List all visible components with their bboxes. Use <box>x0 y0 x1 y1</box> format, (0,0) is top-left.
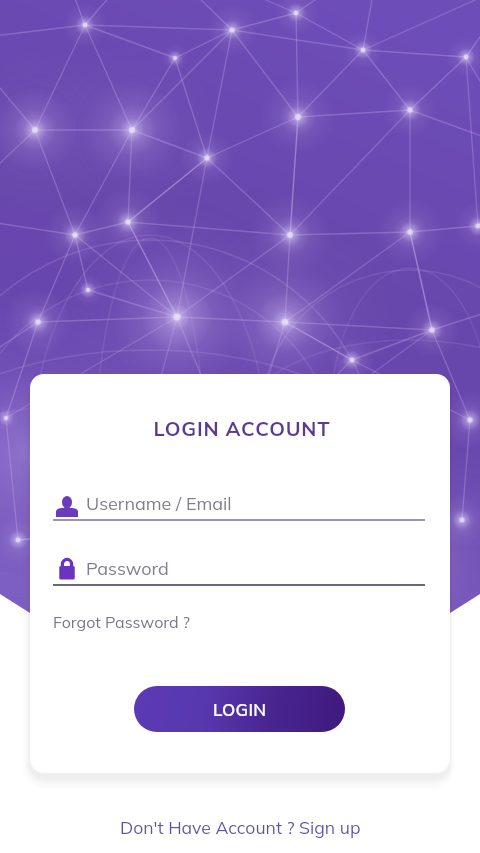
button[interactable]: Forgot Password ? <box>53 612 190 632</box>
staticText: Don't Have Account ? Sign up <box>120 816 361 838</box>
button[interactable]: Don't Have Account ? Sign up <box>0 816 480 838</box>
staticText: Password <box>86 557 169 580</box>
button[interactable]: LOGIN <box>134 686 345 732</box>
staticText: LOGIN ACCOUNT <box>32 416 450 441</box>
staticText: Forgot Password ? <box>53 612 190 632</box>
button[interactable]: Username / Email <box>53 489 425 521</box>
staticText: Username / Email <box>86 492 232 515</box>
staticText: LOGIN <box>213 699 267 720</box>
button[interactable]: Password <box>53 554 425 586</box>
